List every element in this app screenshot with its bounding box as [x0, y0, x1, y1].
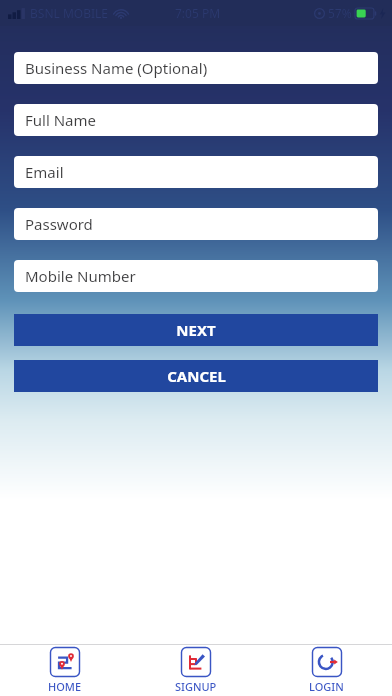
- staticText: 57%: [328, 5, 352, 21]
- staticText: Email: [25, 162, 64, 182]
- staticText: Password: [25, 214, 93, 234]
- other: LOGIN: [312, 647, 342, 677]
- other: HOME: [50, 647, 80, 677]
- button[interactable]: HOME: [0, 645, 130, 696]
- staticText: Business Name (Optional): [25, 58, 208, 78]
- button[interactable]: Mobile Number: [14, 260, 378, 292]
- staticText: Mobile Number: [25, 266, 136, 286]
- button[interactable]: Password: [14, 208, 378, 240]
- button[interactable]: Email: [14, 156, 378, 188]
- button[interactable]: NEXT: [14, 314, 378, 346]
- staticText: 7:05 PM: [175, 5, 221, 21]
- button[interactable]: CANCEL: [14, 360, 378, 392]
- button[interactable]: SIGNUP: [130, 645, 261, 696]
- button[interactable]: Full Name: [14, 104, 378, 136]
- staticText: LOGIN: [309, 679, 344, 694]
- staticText: SIGNUP: [175, 679, 217, 694]
- staticText: HOME: [48, 679, 82, 694]
- button[interactable]: Business Name (Optional): [14, 52, 378, 84]
- staticText: BSNL MOBILE: [30, 5, 109, 21]
- button[interactable]: LOGIN: [261, 645, 392, 696]
- other: SIGNUP: [181, 647, 211, 677]
- staticText: CANCEL: [167, 366, 226, 386]
- staticText: NEXT: [176, 320, 216, 340]
- staticText: Full Name: [25, 110, 96, 130]
